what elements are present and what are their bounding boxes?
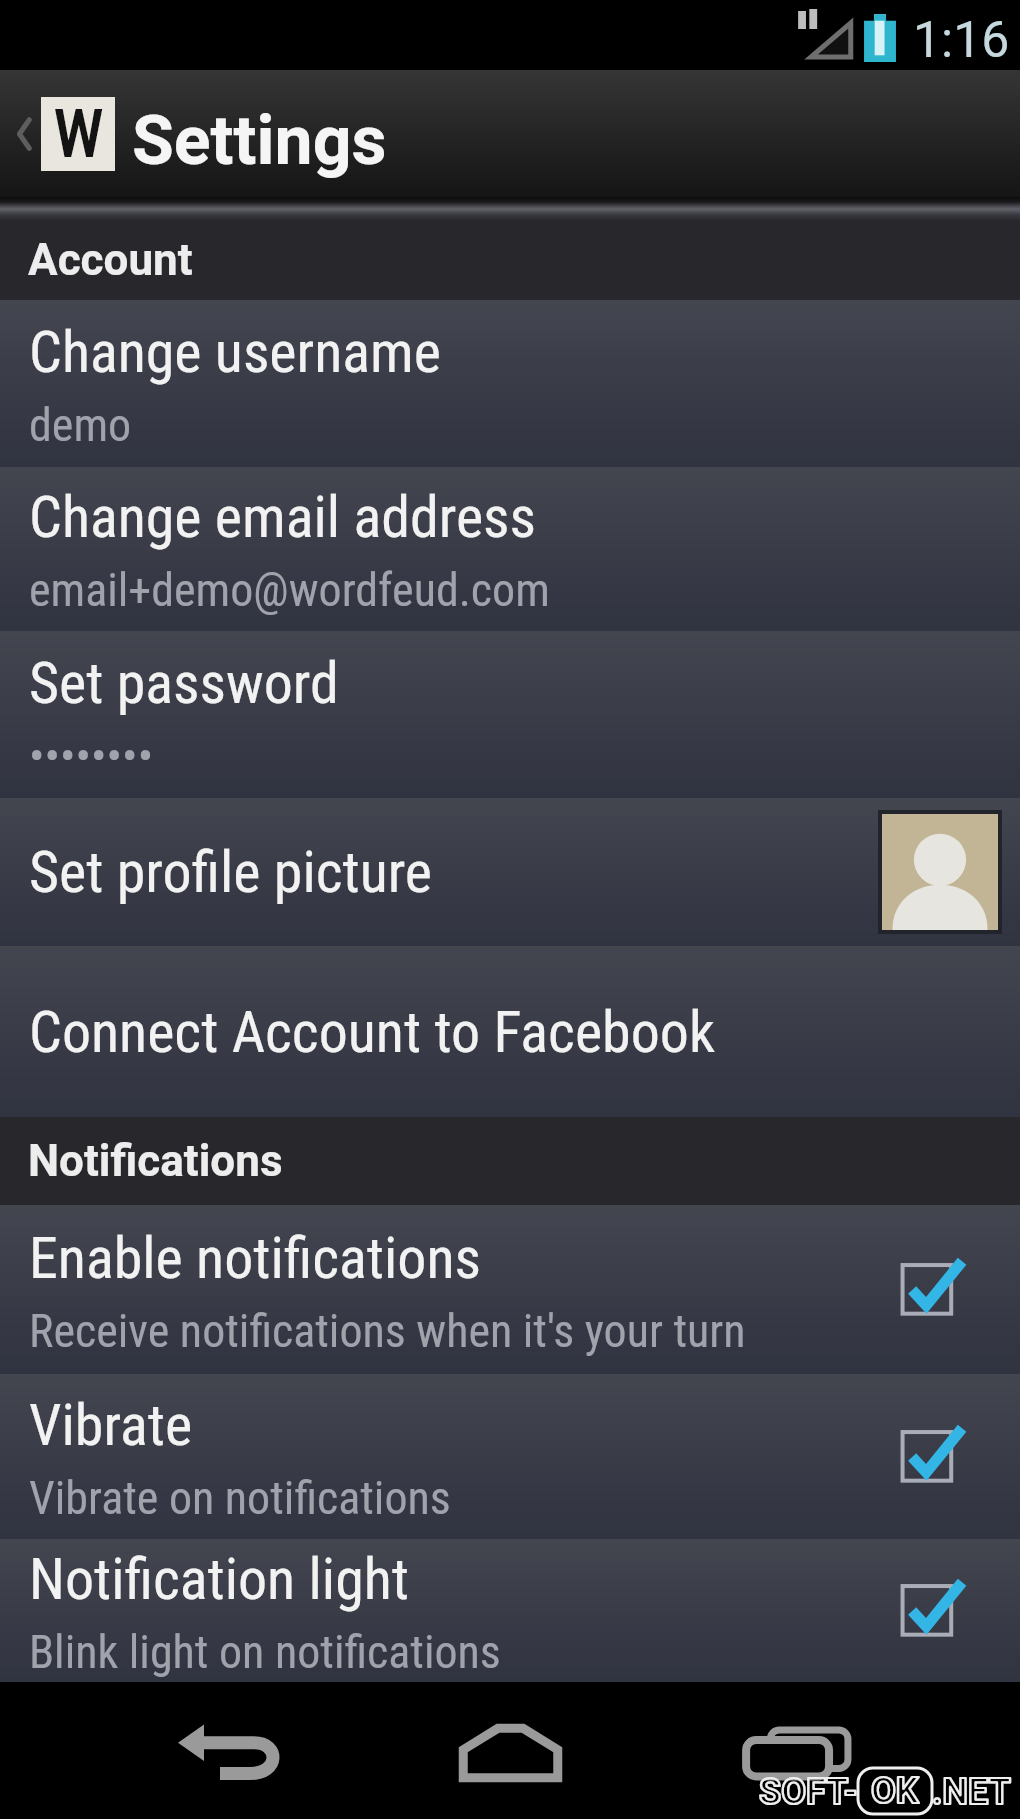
staticText: Settings	[132, 101, 387, 181]
staticText: OK	[871, 1770, 919, 1812]
button[interactable]: Notification light	[0, 1539, 1020, 1682]
button[interactable]: Enable notifications	[0, 1205, 1020, 1374]
staticText: W	[54, 97, 103, 171]
button[interactable]: Set profile picture	[0, 798, 1020, 946]
button[interactable]: Recent apps	[690, 1682, 900, 1819]
staticText: demo	[29, 398, 132, 452]
staticText: Receive notifications when it's your tur…	[29, 1304, 746, 1358]
staticText: Change username	[29, 318, 441, 386]
button[interactable]: Set password	[0, 631, 1020, 798]
staticText: Notification light	[29, 1545, 409, 1613]
button[interactable]: Home	[400, 1682, 620, 1819]
staticText: Connect Account to Facebook	[29, 998, 716, 1066]
staticText: Vibrate	[29, 1391, 193, 1459]
staticText: Change email address	[29, 483, 536, 551]
staticText: SOFT-	[759, 1771, 858, 1813]
button[interactable]: Back	[115, 1682, 345, 1819]
other: Back	[14, 113, 32, 155]
staticText: email+demo@wordfeud.com	[29, 563, 550, 617]
button[interactable]: Change email address	[0, 467, 1020, 631]
staticText: Vibrate on notifications	[29, 1471, 451, 1525]
staticText: Enable notifications	[29, 1224, 481, 1292]
button[interactable]: Connect Account to Facebook	[0, 946, 1020, 1117]
button[interactable]: Back	[0, 70, 1020, 197]
button[interactable]: Vibrate	[0, 1374, 1020, 1539]
staticText: 1:16	[913, 11, 1010, 70]
staticText: Set profile picture	[29, 838, 433, 906]
staticText: Blink light on notifications	[29, 1625, 501, 1679]
staticText: Account	[28, 234, 193, 286]
staticText: Set password	[29, 649, 339, 717]
staticText: Notifications	[28, 1135, 283, 1187]
button[interactable]: Change username	[0, 300, 1020, 467]
staticText: ••••••••	[29, 729, 154, 783]
staticText: .NET	[932, 1771, 1011, 1813]
